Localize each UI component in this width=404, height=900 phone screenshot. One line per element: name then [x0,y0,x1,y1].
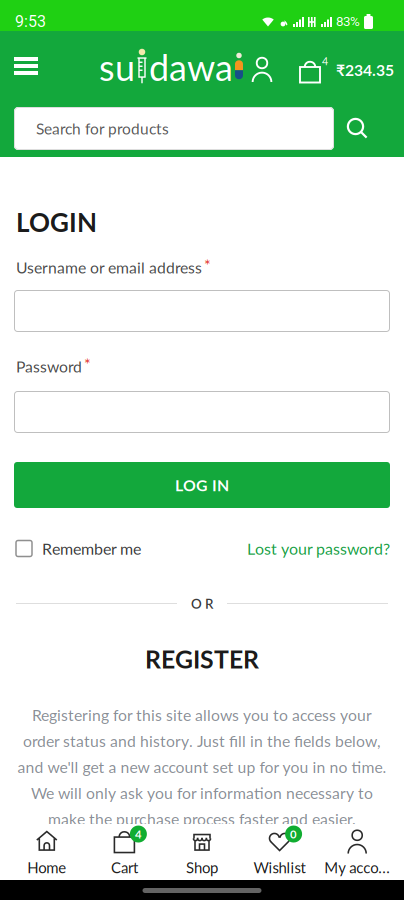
button[interactable]: My account [249,56,274,81]
button[interactable]: Cart [297,58,322,83]
staticText: 0 [290,827,297,841]
button[interactable]: Remember me [16,539,141,558]
button[interactable]: Search for products [14,107,334,150]
staticText: * [204,255,211,274]
staticText: O R [191,595,213,611]
button[interactable]: Lost your password? [247,539,390,558]
button[interactable]: My acco... [318,827,396,876]
staticText: 4 [322,55,328,67]
staticText: LOGIN [16,206,97,238]
button[interactable]: Cart total [336,61,394,79]
staticText: Wishlist [254,858,306,876]
staticText: Remember me [42,539,141,558]
staticText: Cart [111,858,138,876]
staticText: Password [16,357,82,376]
staticText: * [84,354,91,373]
button[interactable]: Wishlist [241,827,318,876]
staticText: make the purchase process faster and eas… [48,810,356,828]
staticText: 83% [336,14,360,29]
button[interactable]: Home [8,827,86,876]
button[interactable]: Shop [163,827,241,876]
staticText: We will only ask you for information nec… [31,784,373,802]
staticText: 9:53 [15,12,46,31]
staticText: and we'll get a new account set up for y… [17,758,386,776]
staticText: REGISTER [145,644,259,674]
staticText: LOG IN [175,475,229,494]
staticText: 4 [135,827,142,841]
button[interactable]: Menu [14,57,38,75]
staticText: Shop [186,858,218,876]
button[interactable]: Cart [86,827,163,876]
staticText: Home [27,858,66,876]
button[interactable]: Password [0,391,390,433]
staticText: Registering for this site allows you to … [32,706,372,724]
staticText: Lost your password? [247,539,390,558]
button[interactable]: LOG IN [14,462,390,508]
staticText: dawa [149,45,233,89]
button[interactable]: Username or email address [0,290,390,332]
staticText: su [99,45,135,89]
staticText: order status and history. Just fill in t… [23,732,381,750]
staticText: ₹234.35 [336,61,394,79]
staticText: Username or email address [16,258,202,277]
staticText: Search for products [36,119,169,138]
button[interactable]: Search [347,118,367,138]
staticText: My acco... [324,858,390,876]
